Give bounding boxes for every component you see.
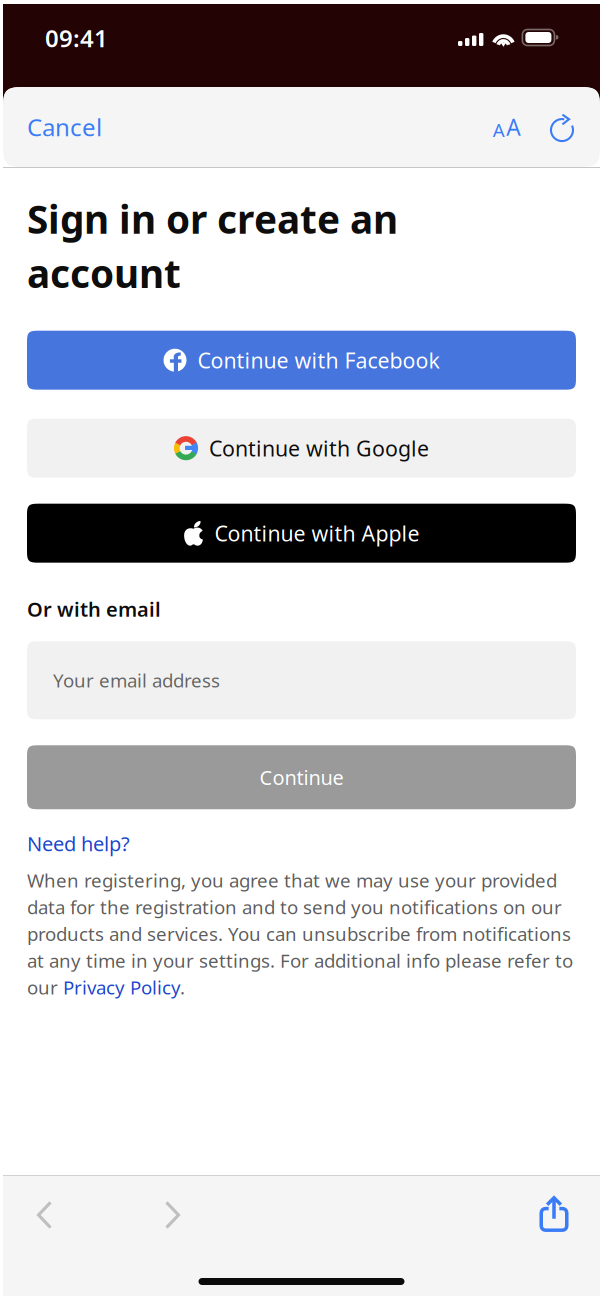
staticText: Cancel — [27, 111, 102, 143]
staticText: Need help? — [27, 830, 130, 857]
staticText: Continue with Facebook — [197, 346, 439, 374]
staticText: Continue with Google — [209, 434, 429, 462]
staticText: Your email address — [53, 668, 220, 693]
staticText: A — [493, 117, 505, 142]
button[interactable]: Continue with Google — [3, 419, 600, 478]
button[interactable]: Reload — [524, 87, 600, 167]
button[interactable]: Need help? — [3, 830, 154, 857]
staticText: Continue with Apple — [214, 519, 419, 547]
button[interactable]: Text size — [489, 87, 524, 167]
button[interactable]: Your email address — [3, 641, 600, 719]
button[interactable]: Forward — [86, 1176, 259, 1250]
button[interactable]: Back — [3, 1176, 86, 1250]
staticText: 09:41 — [45, 22, 108, 54]
button[interactable]: Continue with Apple — [3, 504, 600, 563]
staticText: When registering, you agree that we may … — [27, 868, 573, 1000]
button[interactable]: Continue with Facebook — [3, 331, 600, 390]
button[interactable]: Share — [508, 1176, 600, 1250]
button[interactable]: Continue — [3, 745, 600, 809]
staticText: Or with email — [27, 596, 161, 622]
staticText: A — [506, 112, 520, 142]
staticText: Continue — [259, 764, 343, 791]
staticText: Sign in or create an account — [27, 193, 398, 299]
button[interactable]: Cancel — [3, 87, 120, 167]
